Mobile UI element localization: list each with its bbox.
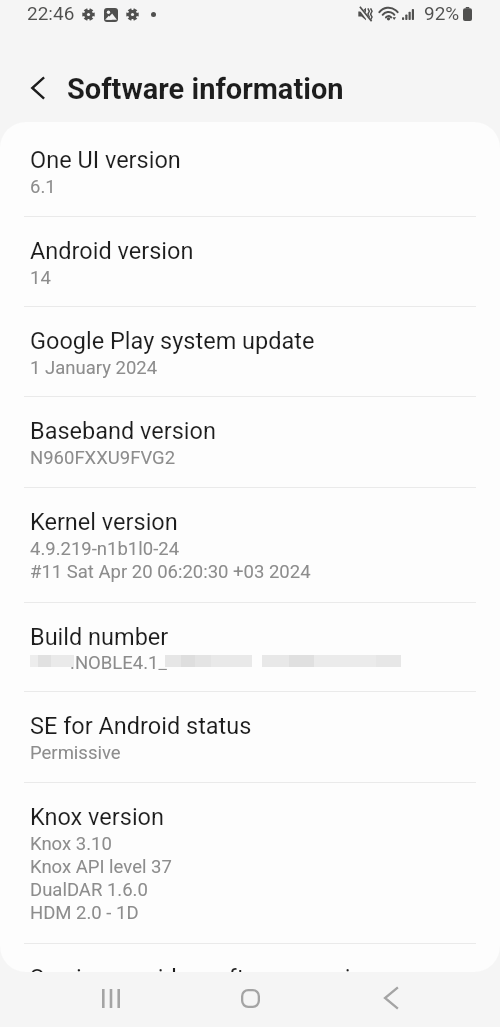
staticText: 1 January 2024	[30, 357, 158, 379]
staticText: 4.9.219-n1b1l0-24	[30, 538, 180, 560]
staticText: Android version	[30, 237, 194, 265]
staticText: 22:46	[27, 2, 75, 24]
button[interactable]: Build number	[0, 603, 500, 691]
button[interactable]: Kernel version	[0, 488, 500, 602]
staticText: Knox version	[30, 803, 164, 831]
staticText: Build number	[30, 623, 169, 651]
staticText: SE for Android status	[30, 712, 252, 740]
button[interactable]: Recent apps	[81, 978, 141, 1018]
staticText: One UI version	[30, 146, 181, 174]
staticText: .NOBLE4.1_	[70, 652, 167, 670]
staticText: Knox 3.10	[30, 833, 112, 855]
button[interactable]: Baseband version	[0, 397, 500, 487]
staticText: Service provider software version	[30, 964, 377, 972]
button[interactable]: Navigate up	[16, 66, 60, 110]
staticText: 6.1	[30, 176, 56, 198]
button[interactable]: SE for Android status	[0, 692, 500, 782]
staticText: Google Play system update	[30, 327, 315, 355]
staticText: DualDAR 1.6.0	[30, 879, 148, 901]
staticText: 14	[30, 267, 51, 289]
staticText: HDM 2.0 - 1D	[30, 902, 139, 924]
staticText: Knox API level 37	[30, 856, 172, 878]
button[interactable]: Google Play system update	[0, 307, 500, 396]
button[interactable]: Service provider software version	[0, 944, 500, 972]
staticText: Baseband version	[30, 417, 216, 445]
button[interactable]: Knox version	[0, 783, 500, 943]
button[interactable]: Back	[361, 978, 421, 1018]
button[interactable]: Android version	[0, 217, 500, 306]
staticText: N960FXXU9FVG2	[30, 447, 176, 469]
staticText: Kernel version	[30, 508, 178, 536]
staticText: Software information	[67, 72, 344, 106]
button[interactable]: One UI version	[0, 126, 500, 216]
staticText: Permissive	[30, 742, 121, 764]
staticText: #11 Sat Apr 20 06:20:30 +03 2024	[30, 561, 311, 583]
staticText: 92%	[424, 2, 460, 24]
button[interactable]: Home	[220, 978, 280, 1018]
